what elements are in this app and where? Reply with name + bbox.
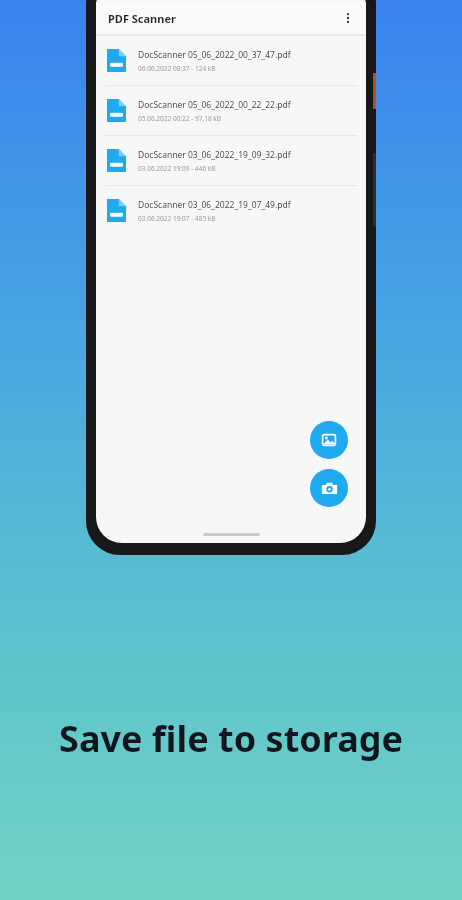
button[interactable]: Take photo: [310, 469, 348, 507]
staticText: 03.06.2022 19:07 - 485 kB: [138, 214, 216, 223]
button[interactable]: DocScanner 05_06_2022_00_22_22.pdf: [96, 86, 366, 136]
staticText: DocScanner 05_06_2022_00_37_47.pdf: [138, 49, 291, 61]
button[interactable]: Pick image: [310, 421, 348, 459]
staticText: DocScanner 05_06_2022_00_22_22.pdf: [138, 99, 291, 111]
staticText: Save file to storage: [0, 714, 462, 763]
button[interactable]: DocScanner 03_06_2022_19_09_32.pdf: [96, 136, 366, 186]
button[interactable]: DocScanner 03_06_2022_19_07_49.pdf: [96, 186, 366, 235]
staticText: 05.06.2022 00:22 - 97,18 kB: [138, 114, 222, 123]
staticText: 03.06.2022 19:09 - 446 kB: [138, 164, 216, 173]
button[interactable]: DocScanner 05_06_2022_00_37_47.pdf: [96, 36, 366, 86]
staticText: PDF Scanner: [108, 11, 176, 26]
staticText: DocScanner 03_06_2022_19_09_32.pdf: [138, 149, 291, 161]
staticText: DocScanner 03_06_2022_19_07_49.pdf: [138, 199, 291, 211]
staticText: 06.06.2022 00:37 - 124 kB: [138, 64, 216, 73]
button[interactable]: More options: [336, 6, 360, 30]
